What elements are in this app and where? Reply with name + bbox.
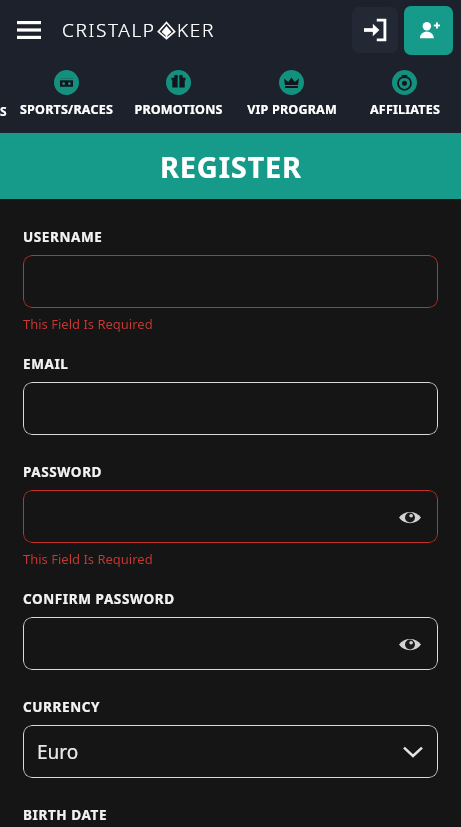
staticText: PROMOTIONS bbox=[134, 101, 223, 118]
button[interactable]: Show password bbox=[396, 503, 424, 531]
staticText: BIRTH DATE bbox=[23, 806, 108, 824]
staticText: S bbox=[0, 103, 8, 119]
staticText: AFFILIATES bbox=[370, 101, 440, 118]
staticText: SPORTS/RACES bbox=[20, 101, 113, 118]
button[interactable]: SPORTS/RACES bbox=[10, 60, 122, 133]
button[interactable]: Show password bbox=[23, 490, 438, 543]
staticText: CRISTALP bbox=[62, 17, 156, 43]
button[interactable]: Register bbox=[404, 6, 453, 55]
staticText: CURRENCY bbox=[23, 698, 101, 716]
button[interactable]: Show password bbox=[396, 630, 424, 658]
staticText: KER bbox=[177, 17, 215, 43]
staticText: REGISTER bbox=[160, 147, 302, 186]
staticText: Euro bbox=[37, 739, 79, 765]
button[interactable]: VIP PROGRAM bbox=[235, 60, 348, 133]
staticText: This Field Is Required bbox=[23, 550, 153, 568]
button[interactable]: Euro bbox=[23, 725, 438, 778]
staticText: This Field Is Required bbox=[23, 315, 153, 333]
button[interactable]: AFFILIATES bbox=[348, 60, 461, 133]
button[interactable] bbox=[23, 255, 438, 308]
staticText: PASSWORD bbox=[23, 463, 103, 481]
button[interactable]: Show password bbox=[23, 617, 438, 670]
staticText: VIP PROGRAM bbox=[247, 101, 337, 118]
staticText: CONFIRM PASSWORD bbox=[23, 590, 175, 608]
button[interactable]: Login bbox=[352, 7, 398, 53]
button[interactable] bbox=[23, 382, 438, 435]
button[interactable]: Menu bbox=[12, 13, 46, 47]
staticText: EMAIL bbox=[23, 355, 69, 373]
button[interactable]: PROMOTIONS bbox=[122, 60, 235, 133]
staticText: USERNAME bbox=[23, 228, 103, 246]
